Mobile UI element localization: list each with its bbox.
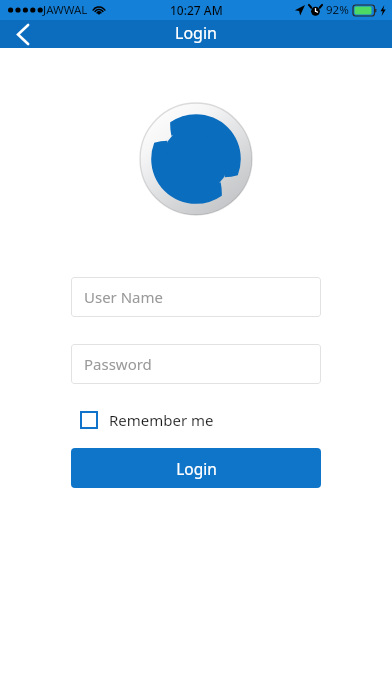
- button[interactable]: Password: [71, 344, 321, 384]
- button[interactable]: Login: [71, 448, 321, 488]
- staticText: 92%: [326, 2, 349, 18]
- button[interactable]: User Name: [71, 277, 321, 317]
- staticText: Login: [176, 458, 217, 479]
- staticText: Login: [175, 22, 217, 44]
- staticText: Password: [84, 354, 152, 374]
- button[interactable]: Back: [0, 20, 46, 48]
- staticText: 10:27 AM: [170, 2, 223, 18]
- button[interactable]: Remember me: [71, 406, 321, 434]
- staticText: JAWWAL: [43, 2, 88, 18]
- staticText: User Name: [84, 287, 164, 307]
- staticText: Remember me: [109, 410, 214, 430]
